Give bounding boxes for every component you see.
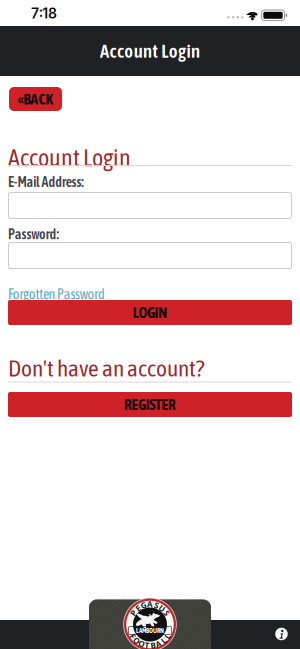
- staticText: G: [141, 600, 147, 610]
- staticText: LAMBOURN: [136, 627, 164, 634]
- staticText: S: [154, 600, 158, 610]
- staticText: Forgotten Password: [8, 286, 105, 302]
- staticText: U: [159, 603, 165, 613]
- staticText: REGISTER: [124, 396, 176, 413]
- staticText: Account Login: [100, 40, 200, 62]
- staticText: S: [165, 607, 169, 618]
- staticText: Don't have an account?: [8, 355, 204, 381]
- staticText: LOGIN: [133, 304, 167, 321]
- staticText: T: [145, 640, 150, 649]
- staticText: «BACK: [17, 90, 53, 108]
- staticText: Password:: [8, 226, 58, 242]
- staticText: P: [131, 607, 136, 618]
- staticText: 7:18: [31, 5, 57, 22]
- staticText: O: [138, 638, 144, 649]
- staticText: F: [131, 631, 135, 641]
- staticText: A: [147, 599, 153, 609]
- staticText: B: [150, 640, 155, 649]
- staticText: E-Mail Address:: [8, 174, 83, 190]
- staticText: L: [165, 631, 169, 641]
- staticText: O: [133, 635, 139, 646]
- staticText: Account Login: [8, 144, 131, 171]
- staticText: L: [161, 635, 165, 646]
- staticText: A: [155, 638, 161, 649]
- staticText: E: [136, 603, 140, 613]
